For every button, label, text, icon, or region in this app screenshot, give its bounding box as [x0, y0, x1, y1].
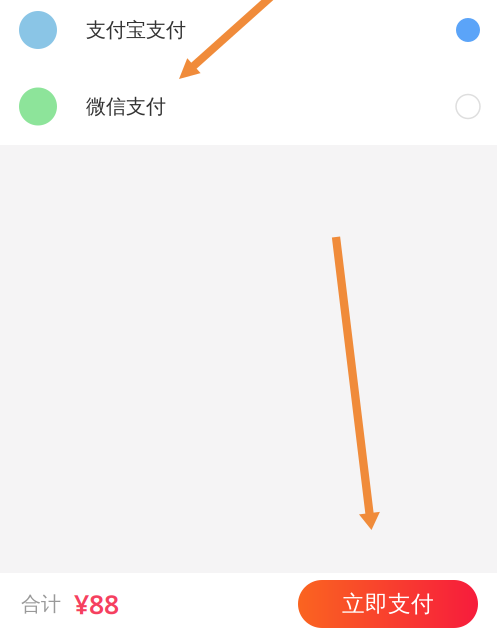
- button[interactable]: 立即支付: [298, 580, 478, 628]
- staticText: ¥88: [74, 586, 119, 622]
- staticText: 支付宝支付: [86, 18, 186, 42]
- button[interactable]: 微信支付: [0, 68, 497, 145]
- staticText: 立即支付: [342, 590, 434, 618]
- button[interactable]: 支付宝支付: [0, 0, 497, 68]
- staticText: 合计: [21, 592, 61, 616]
- staticText: 微信支付: [86, 94, 166, 119]
